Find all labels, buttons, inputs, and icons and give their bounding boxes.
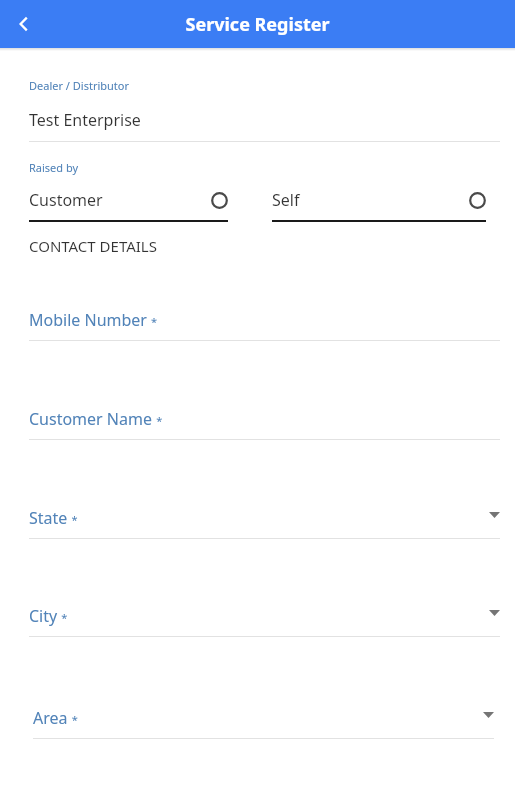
button[interactable]: City * xyxy=(0,605,515,637)
staticText: Test Enterprise xyxy=(29,109,141,131)
staticText: Raised by xyxy=(29,160,79,175)
button[interactable]: Back xyxy=(0,0,48,48)
staticText: Dealer / Distributor xyxy=(29,78,130,93)
button[interactable]: Mobile Number * xyxy=(0,309,515,341)
button[interactable]: Customer Name * xyxy=(0,408,515,440)
staticText: Mobile Number * xyxy=(29,309,158,331)
staticText: Self xyxy=(272,189,300,211)
staticText: Service Register xyxy=(185,12,330,37)
button[interactable]: Area * xyxy=(0,707,515,739)
staticText: State * xyxy=(29,507,78,529)
button[interactable]: Customer xyxy=(29,189,228,222)
staticText: Area * xyxy=(33,707,78,729)
staticText: Customer xyxy=(29,189,103,211)
staticText: City * xyxy=(29,605,68,627)
staticText: CONTACT DETAILS xyxy=(29,236,157,256)
button[interactable]: Self xyxy=(272,189,486,222)
staticText: Customer Name * xyxy=(29,408,163,430)
button[interactable]: State * xyxy=(0,507,515,539)
